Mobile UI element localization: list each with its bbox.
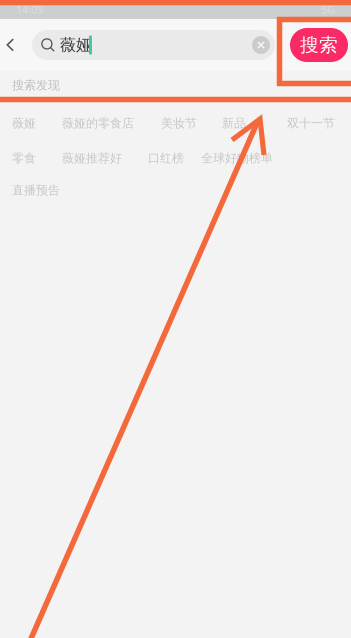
button[interactable]: 薇娅推荐好 bbox=[60, 148, 124, 169]
button[interactable]: 搜索 bbox=[290, 28, 348, 62]
button[interactable]: 全球好物榜单 bbox=[199, 148, 275, 169]
staticText: 双十一节 bbox=[287, 116, 335, 131]
staticText: 新品 bbox=[222, 116, 246, 131]
staticText: 薇娅的零食店 bbox=[62, 116, 134, 131]
staticText: 零食 bbox=[12, 151, 36, 166]
button[interactable]: Clear search text bbox=[252, 36, 270, 54]
staticText: 搜索 bbox=[300, 33, 338, 56]
staticText: 全球好物榜单 bbox=[201, 151, 273, 166]
staticText: 直播预告 bbox=[12, 183, 60, 198]
button[interactable]: 直播预告 bbox=[10, 180, 62, 201]
button[interactable]: 双十一节 bbox=[285, 113, 337, 134]
button[interactable]: 口红榜 bbox=[146, 148, 186, 169]
button[interactable]: 美妆节 bbox=[159, 113, 199, 134]
staticText: 薇娅推荐好 bbox=[62, 151, 122, 166]
staticText: 5G bbox=[321, 2, 335, 17]
staticText: 美妆节 bbox=[161, 116, 197, 131]
button[interactable]: 薇娅的零食店 bbox=[60, 113, 136, 134]
button[interactable]: 薇娅 bbox=[10, 113, 38, 134]
staticText: 薇娅 bbox=[60, 35, 92, 55]
button[interactable]: 新品 bbox=[220, 113, 248, 134]
staticText: 14:05 bbox=[16, 2, 43, 17]
staticText: 搜索发现 bbox=[12, 78, 60, 93]
button[interactable]: 零食 bbox=[10, 148, 38, 169]
staticText: 薇娅 bbox=[12, 116, 36, 131]
button[interactable]: Back bbox=[3, 24, 32, 66]
staticText: 口红榜 bbox=[148, 151, 184, 166]
